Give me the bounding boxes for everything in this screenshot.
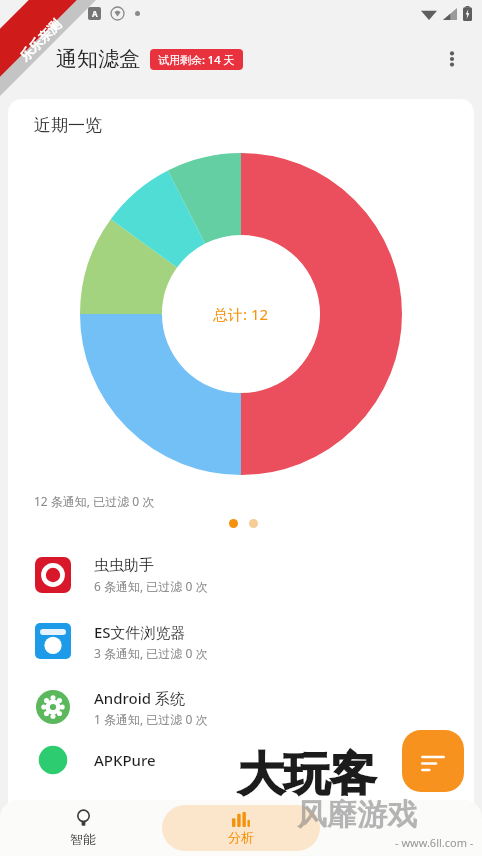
staticText: 近期一览 [34,115,102,136]
staticText: 3 条通知, 已过滤 0 次 [94,645,208,661]
staticText: 通知滤盒 [56,46,140,72]
staticText: A [92,8,98,19]
staticText: 试用剩余: 14 天 [158,52,235,67]
button[interactable]: APKPure [8,740,474,780]
staticText: Android 系统 [94,688,185,708]
button[interactable]: 智能 [4,800,162,856]
staticText: 总计: 12 [213,304,269,324]
staticText: 风靡游戏 [297,796,417,834]
staticText: - www.6ll.com - [395,835,474,850]
staticText: 12 条通知, 已过滤 0 次 [34,493,155,509]
staticText: APKPure [94,750,156,770]
button[interactable]: ES文件浏览器 [8,608,474,674]
button[interactable]: More options [430,37,474,81]
staticText: 乐乐亲测 [16,16,64,64]
button[interactable]: 虫虫助手 [8,542,474,608]
button[interactable]: Sort [402,730,464,792]
button[interactable]: 试用剩余: 14 天 [150,49,243,70]
staticText: 分析 [228,829,254,845]
staticText: 大玩客 [238,746,376,804]
staticText: ES文件浏览器 [94,622,186,642]
staticText: 智能 [70,831,96,847]
button[interactable]: 分析 [162,805,320,851]
button[interactable]: Android 系统 [8,674,474,740]
staticText: 6 条通知, 已过滤 0 次 [94,578,208,594]
staticText: 1 条通知, 已过滤 0 次 [94,711,208,727]
staticText: 虫虫助手 [94,556,154,575]
